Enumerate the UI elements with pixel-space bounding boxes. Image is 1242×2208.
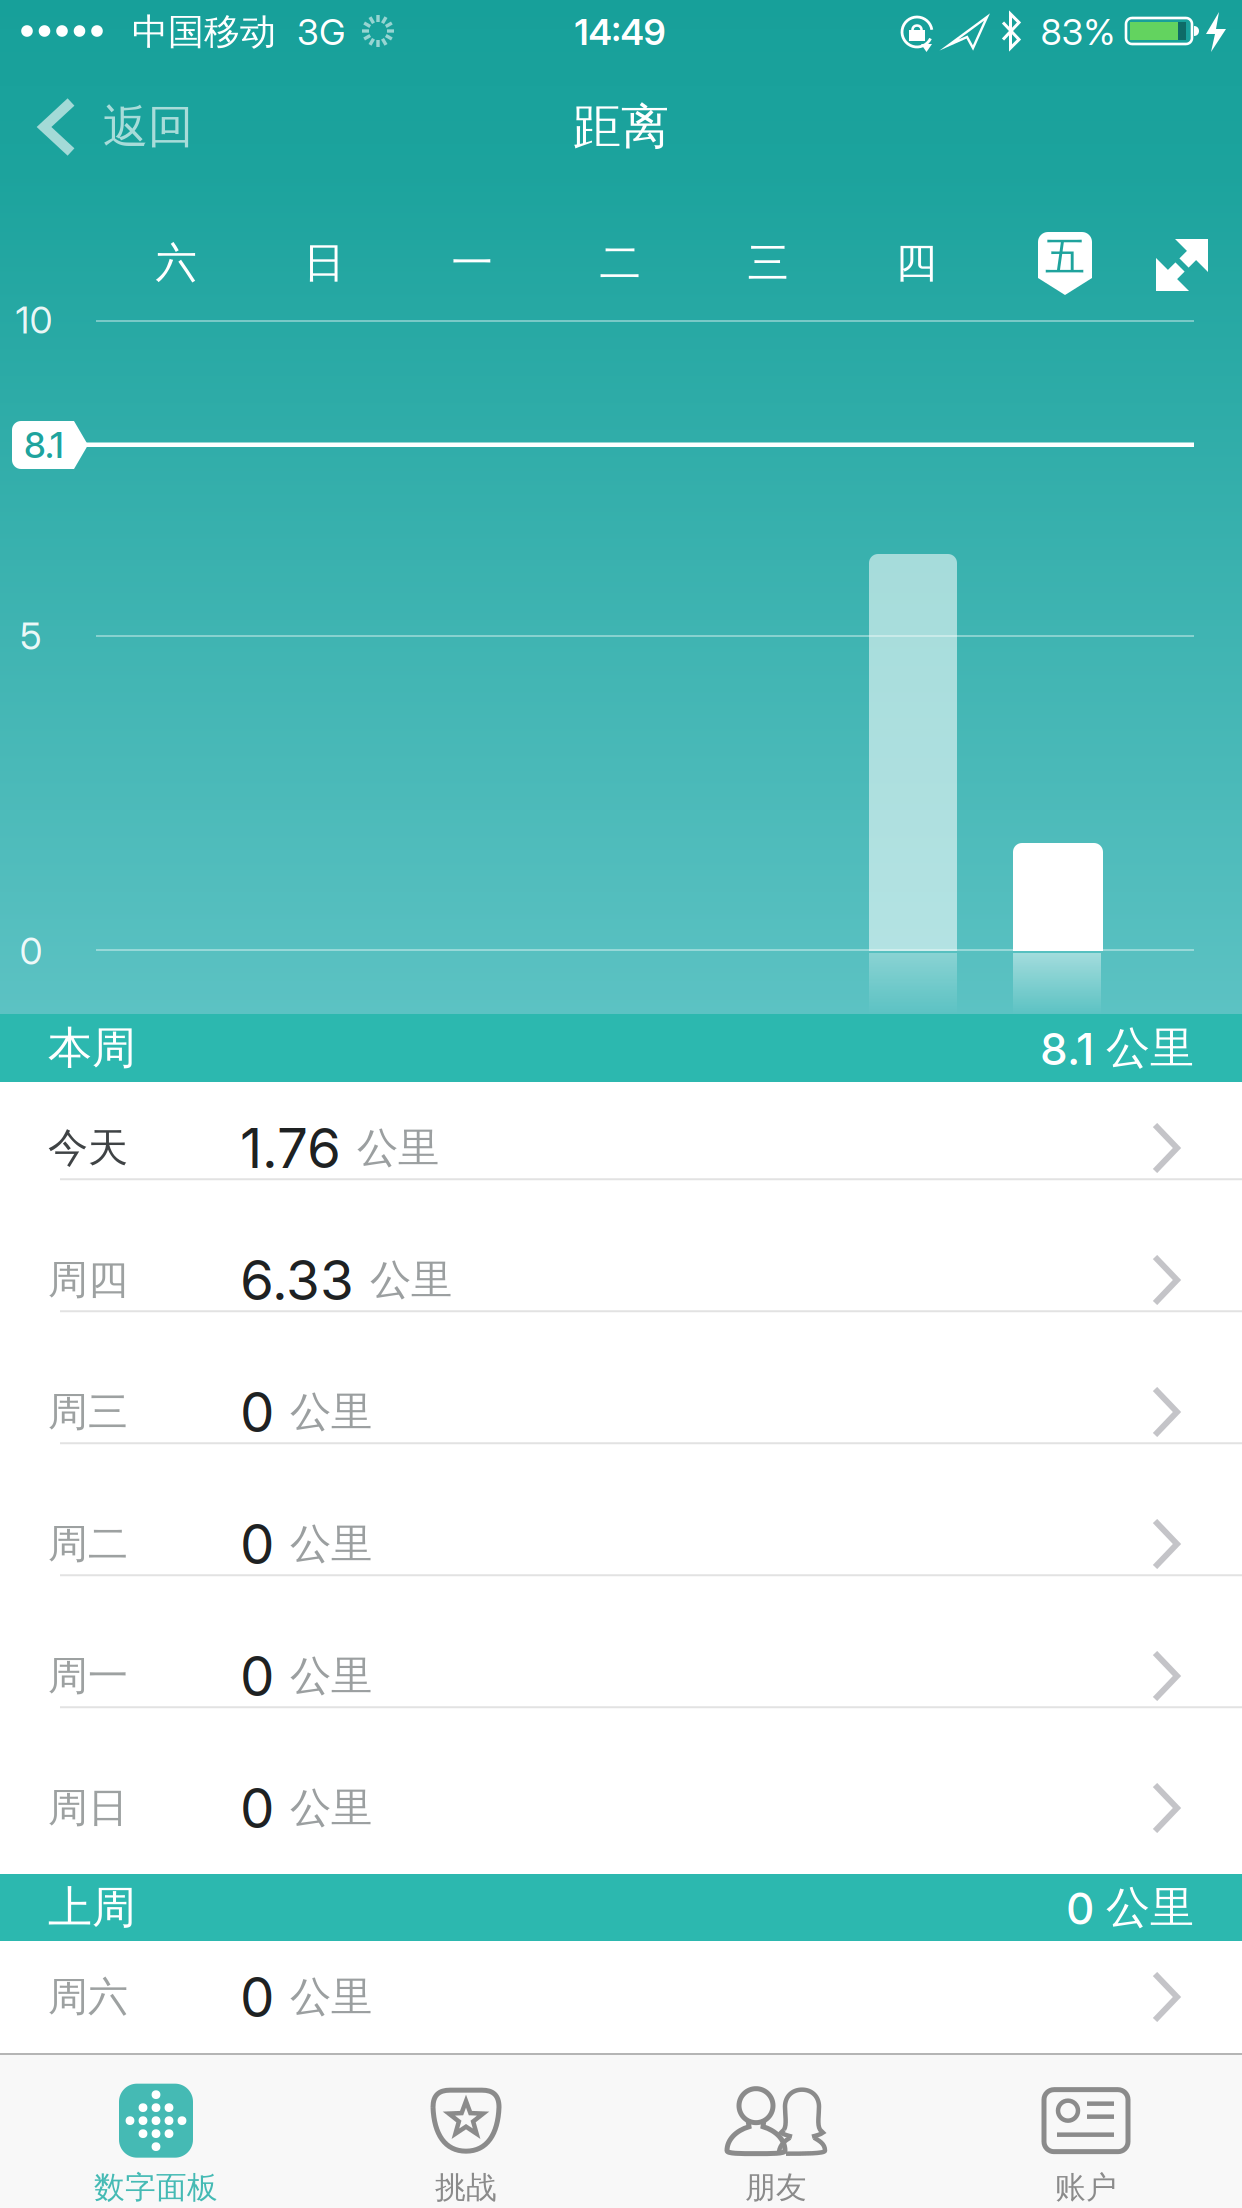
staticText: 六 <box>155 238 196 288</box>
button[interactable]: 一 <box>412 218 532 308</box>
button[interactable]: 日 <box>264 218 384 308</box>
button[interactable]: 周二 <box>0 1478 1242 1610</box>
staticText: 今天 <box>48 1123 128 1172</box>
staticText: 0 公里 <box>1066 1880 1194 1934</box>
staticText: 1.76 <box>240 1116 341 1180</box>
staticText: 0 <box>240 1776 274 1840</box>
staticText: 一 <box>451 238 492 288</box>
staticText: 五 <box>1045 232 1085 281</box>
button[interactable]: 周四 <box>0 1214 1242 1346</box>
button[interactable]: 五 <box>1038 232 1092 295</box>
staticText: 公里 <box>290 1783 372 1833</box>
staticText: 0 <box>240 1512 274 1576</box>
button[interactable]: 数字面板 <box>1 2055 311 2208</box>
staticText: 0 <box>240 1644 274 1708</box>
staticText: 周四 <box>48 1255 128 1304</box>
staticText: 5 <box>20 614 42 658</box>
staticText: 14:49 <box>574 11 665 53</box>
staticText: 朋友 <box>745 2169 807 2206</box>
staticText: 8.1 <box>24 424 64 466</box>
staticText: 10 <box>15 298 52 342</box>
staticText: 公里 <box>290 1387 372 1437</box>
staticText: 6.33 <box>240 1248 354 1312</box>
staticText: 本周 <box>48 1021 136 1075</box>
staticText: 四 <box>895 238 936 288</box>
button[interactable]: 挑战 <box>311 2055 621 2208</box>
staticText: 周三 <box>48 1387 128 1436</box>
staticText: 公里 <box>290 1651 372 1701</box>
button[interactable]: 周日 <box>0 1742 1242 1874</box>
button[interactable]: 周一 <box>0 1610 1242 1742</box>
button[interactable]: 二 <box>560 218 680 308</box>
staticText: 挑战 <box>435 2169 497 2206</box>
staticText: 公里 <box>357 1123 439 1173</box>
staticText: 中国移动 <box>132 10 276 54</box>
button[interactable]: 返回 <box>0 63 220 191</box>
staticText: 二 <box>599 238 640 288</box>
staticText: 0 <box>240 1380 274 1444</box>
button[interactable]: 周六 <box>0 1941 1242 2053</box>
staticText: 83% <box>1040 11 1115 53</box>
button[interactable]: 三 <box>708 218 828 308</box>
staticText: 公里 <box>290 1519 372 1569</box>
button[interactable]: 全屏 <box>1156 239 1208 291</box>
staticText: 公里 <box>370 1255 452 1305</box>
staticText: 周一 <box>48 1651 128 1700</box>
button[interactable]: 六 <box>116 218 236 308</box>
button[interactable]: 朋友 <box>621 2055 931 2208</box>
staticText: 三 <box>747 238 788 288</box>
staticText: 8.1 公里 <box>1040 1021 1194 1075</box>
staticText: 0 <box>19 929 42 973</box>
staticText: 数字面板 <box>94 2169 218 2206</box>
button[interactable]: 今天 <box>0 1082 1242 1214</box>
staticText: 周二 <box>48 1519 128 1568</box>
staticText: 公里 <box>290 1972 372 2022</box>
staticText: 上周 <box>48 1880 136 1934</box>
button[interactable]: 四 <box>856 218 976 308</box>
button[interactable]: 周三 <box>0 1346 1242 1478</box>
button[interactable]: 账户 <box>931 2055 1241 2208</box>
staticText: 周六 <box>48 1972 128 2021</box>
staticText: 返回 <box>103 99 193 155</box>
staticText: 周日 <box>48 1783 128 1832</box>
staticText: 3G <box>297 11 345 53</box>
staticText: 日 <box>303 238 344 288</box>
staticText: 账户 <box>1055 2169 1117 2206</box>
staticText: 距离 <box>573 97 669 156</box>
staticText: 0 <box>240 1965 274 2029</box>
